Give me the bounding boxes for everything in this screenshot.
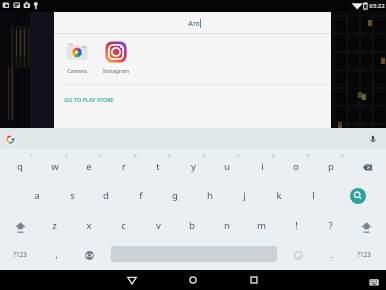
staticText: . [330, 248, 333, 261]
staticText: m [257, 219, 266, 232]
button[interactable]: Camera [58, 40, 96, 74]
staticText: a [34, 189, 40, 202]
button[interactable]: Emoji [281, 242, 315, 268]
button[interactable]: . [314, 241, 348, 267]
staticText: v [156, 219, 161, 232]
button[interactable]: l [296, 182, 330, 208]
button[interactable]: GO TO PLAY STORE [60, 91, 118, 107]
button[interactable]: k [262, 182, 296, 208]
staticText: u [224, 160, 230, 173]
button[interactable]: Am [154, 14, 234, 32]
staticText: q [17, 160, 23, 173]
staticText: f [139, 189, 143, 202]
button[interactable]: Shift [349, 214, 383, 240]
button[interactable]: u [210, 153, 244, 179]
staticText: i [261, 160, 264, 173]
staticText: ! [295, 219, 298, 232]
staticText: x [86, 219, 92, 232]
staticText: z [52, 219, 57, 232]
staticText: Camera [58, 67, 96, 74]
button[interactable]: Shift [3, 214, 37, 240]
button[interactable]: Change language [72, 242, 106, 268]
staticText: s [70, 189, 75, 202]
staticText: ?123 [357, 250, 371, 259]
button[interactable]: Google [3, 132, 18, 147]
staticText: h [207, 189, 213, 202]
button[interactable]: e [72, 153, 106, 179]
staticText: r [122, 160, 126, 173]
button[interactable]: v [141, 212, 175, 238]
button[interactable]: Home [183, 271, 203, 289]
button[interactable]: c [106, 212, 140, 238]
button[interactable]: g [158, 182, 192, 208]
button[interactable]: , [39, 241, 73, 267]
staticText: ? [328, 219, 333, 232]
button[interactable]: ?123 [4, 246, 36, 262]
staticText: p [328, 160, 334, 173]
button[interactable]: Backspace [350, 154, 384, 180]
staticText: ?123 [13, 250, 27, 259]
button[interactable]: j [227, 182, 261, 208]
staticText: c [121, 219, 126, 232]
staticText: 8 [272, 153, 275, 159]
staticText: k [276, 189, 282, 202]
staticText: 6 [203, 153, 206, 159]
staticText: b [189, 219, 195, 232]
staticText: n [224, 219, 230, 232]
staticText: j [243, 189, 246, 202]
staticText: t [156, 160, 160, 173]
button[interactable]: z [37, 212, 71, 238]
staticText: o [293, 160, 299, 173]
staticText: 5 [168, 153, 171, 159]
button[interactable]: d [89, 182, 123, 208]
staticText: 1 [30, 153, 33, 159]
button[interactable]: w [38, 153, 72, 179]
button[interactable]: n [210, 212, 244, 238]
staticText: Am [188, 18, 200, 28]
button[interactable]: b [175, 212, 209, 238]
button[interactable]: m [244, 212, 278, 238]
button[interactable]: h [193, 182, 227, 208]
staticText: 0 [341, 153, 344, 159]
button[interactable]: ! [279, 212, 313, 238]
button[interactable]: Instagram [97, 40, 135, 74]
button[interactable]: q [3, 153, 37, 179]
staticText: w [51, 160, 59, 173]
button[interactable]: f [124, 182, 158, 208]
staticText: g [172, 189, 178, 202]
button[interactable]: s [55, 182, 89, 208]
staticText: e [86, 160, 92, 173]
button[interactable]: r [107, 153, 141, 179]
staticText: GO TO PLAY STORE [64, 96, 114, 103]
staticText: 4 [134, 153, 137, 159]
button[interactable]: ? [313, 212, 347, 238]
button[interactable]: Back [122, 271, 142, 289]
button[interactable]: o [279, 153, 313, 179]
button[interactable]: t [141, 153, 175, 179]
button[interactable]: p [314, 153, 348, 179]
button[interactable]: a [20, 182, 54, 208]
staticText: 2 [65, 153, 68, 159]
button[interactable]: x [72, 212, 106, 238]
button[interactable]: Search [350, 188, 366, 204]
staticText: 7 [237, 153, 240, 159]
button[interactable]: y [176, 153, 210, 179]
button[interactable]: i [245, 153, 279, 179]
staticText: 3 [99, 153, 102, 159]
staticText: Instagram [97, 67, 135, 74]
staticText: y [191, 160, 196, 173]
staticText: , [55, 248, 58, 261]
staticText: 03:22 [369, 2, 385, 10]
button[interactable]: ?123 [348, 246, 380, 262]
staticText: d [103, 189, 109, 202]
button[interactable]: Hide keyboard [368, 276, 384, 290]
staticText: l [312, 189, 315, 202]
staticText: 9 [306, 153, 309, 159]
button[interactable]: Recents [244, 271, 264, 289]
button[interactable]: Voice input [366, 132, 380, 146]
